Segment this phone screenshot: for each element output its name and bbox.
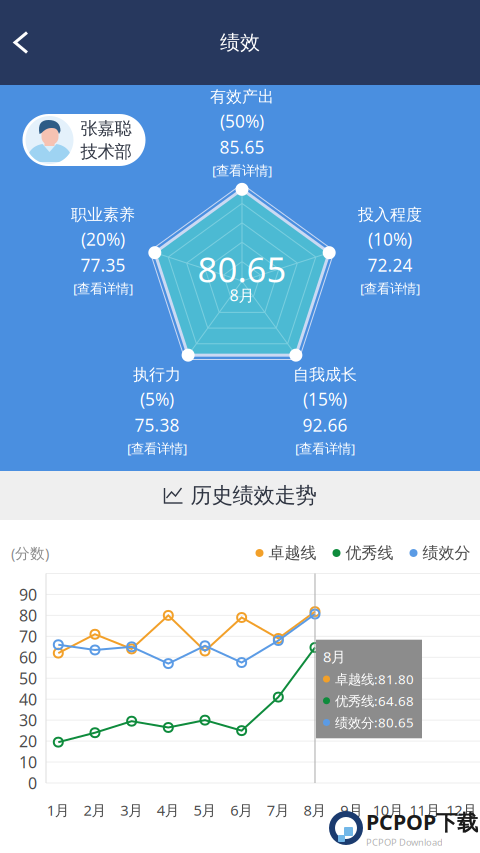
- staticText: 3月: [120, 800, 143, 820]
- staticText: 11月: [409, 800, 440, 820]
- staticText: [查看详情]: [127, 439, 187, 457]
- staticText: 90: [19, 584, 37, 605]
- staticText: 80.65: [197, 246, 286, 292]
- staticText: (分数): [11, 543, 49, 563]
- staticText: 8月: [323, 647, 346, 666]
- staticText: 自我成长: [293, 365, 357, 384]
- staticText: 9月: [340, 800, 363, 820]
- staticText: 卓越线:81.80: [335, 670, 414, 688]
- staticText: 职业素养: [71, 205, 135, 224]
- staticText: 75.38: [134, 413, 179, 436]
- button[interactable]: 张嘉聪: [22, 114, 145, 166]
- staticText: 优秀线:64.68: [335, 692, 414, 710]
- button[interactable]: [查看详情]: [295, 439, 355, 457]
- button[interactable]: [查看详情]: [127, 439, 187, 457]
- staticText: PCPOP下载: [366, 808, 478, 836]
- staticText: PCPOP Download: [366, 836, 443, 848]
- staticText: 执行力: [133, 365, 181, 384]
- staticText: [查看详情]: [212, 161, 272, 179]
- staticText: (20%): [81, 227, 125, 250]
- button[interactable]: 卓越线: [255, 543, 316, 563]
- staticText: 30: [19, 709, 37, 731]
- staticText: 92.66: [302, 413, 347, 436]
- staticText: 投入程度: [358, 205, 422, 224]
- staticText: 80: [19, 605, 37, 626]
- staticText: 卓越线: [268, 543, 316, 563]
- staticText: 绩效: [220, 30, 260, 55]
- staticText: 10月: [373, 800, 404, 820]
- staticText: 5月: [193, 800, 216, 820]
- staticText: 85.65: [219, 135, 264, 158]
- staticText: 7月: [267, 800, 290, 820]
- staticText: 6月: [230, 800, 253, 820]
- staticText: 1月: [47, 800, 70, 820]
- staticText: 77.35: [80, 253, 125, 276]
- staticText: (15%): [303, 387, 347, 410]
- button[interactable]: 绩效分: [409, 543, 470, 563]
- staticText: 绩效分:80.65: [335, 714, 414, 731]
- staticText: 优秀线: [345, 543, 393, 563]
- staticText: 2月: [83, 800, 106, 820]
- staticText: 8月: [229, 284, 254, 306]
- staticText: 40: [19, 689, 37, 710]
- staticText: 4月: [157, 800, 180, 820]
- staticText: (10%): [368, 227, 412, 250]
- staticText: 历史绩效走势: [190, 482, 316, 509]
- button[interactable]: 优秀线: [332, 543, 393, 563]
- staticText: 72.24: [367, 253, 412, 276]
- staticText: 10: [19, 751, 37, 773]
- staticText: (5%): [140, 387, 174, 410]
- staticText: 60: [19, 647, 37, 668]
- staticText: 张嘉聪: [80, 118, 131, 139]
- staticText: 绩效分: [422, 543, 470, 563]
- staticText: [查看详情]: [360, 279, 420, 297]
- staticText: 技术部: [80, 141, 131, 162]
- staticText: 20: [19, 730, 37, 752]
- staticText: [查看详情]: [73, 279, 133, 297]
- button[interactable]: [查看详情]: [212, 161, 272, 179]
- staticText: 50: [19, 668, 37, 689]
- button[interactable]: Back: [0, 22, 44, 62]
- staticText: 有效产出: [210, 87, 274, 106]
- staticText: (50%): [220, 109, 264, 132]
- button[interactable]: [查看详情]: [73, 279, 133, 297]
- staticText: 70: [19, 626, 37, 647]
- button[interactable]: [查看详情]: [360, 279, 420, 297]
- staticText: 8月: [303, 800, 326, 820]
- staticText: 0: [28, 772, 37, 794]
- staticText: 12月: [446, 800, 477, 820]
- staticText: [查看详情]: [295, 439, 355, 457]
